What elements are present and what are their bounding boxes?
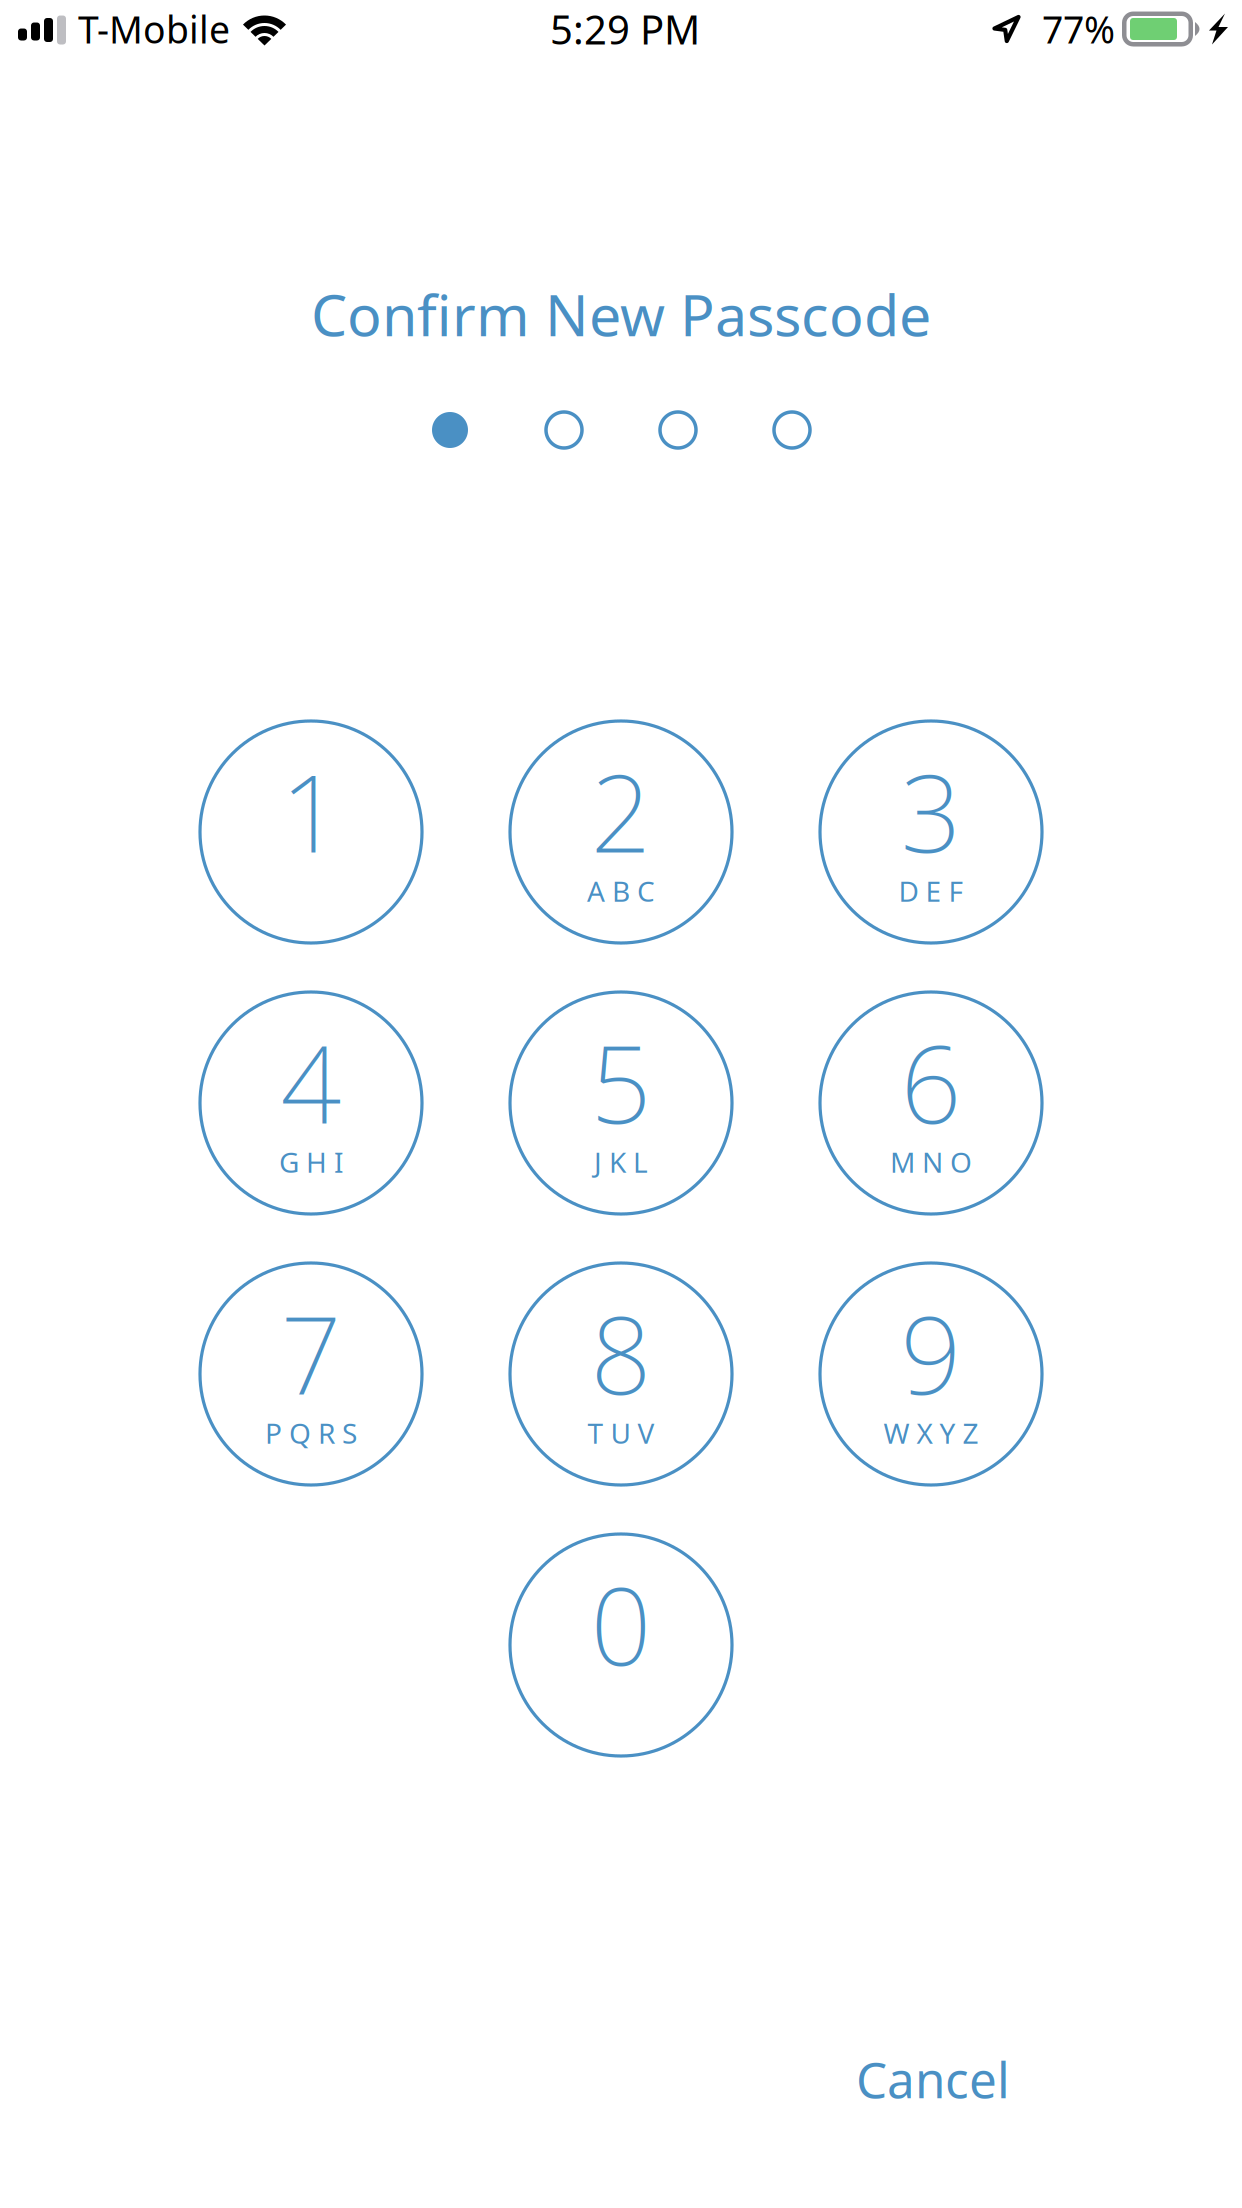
staticText: 5:29 PM	[550, 2, 700, 55]
staticText: 77%	[1042, 4, 1115, 54]
staticText: PQRS	[265, 1414, 357, 1452]
staticText: T-Mobile	[78, 4, 230, 54]
staticText: 1	[280, 740, 341, 882]
staticText: 3	[900, 740, 961, 882]
button[interactable]: 4 GHI	[200, 992, 422, 1214]
staticText: WXYZ	[883, 1414, 978, 1452]
staticText: 5	[590, 1011, 651, 1153]
button[interactable]: Cancel	[856, 2056, 1010, 2102]
staticText: 4	[280, 1011, 341, 1153]
staticText: TUV	[587, 1414, 654, 1452]
staticText: 9	[900, 1282, 961, 1424]
staticText: 7	[280, 1282, 341, 1424]
staticText: GHI	[279, 1143, 343, 1181]
button[interactable]: 1	[200, 721, 422, 943]
staticText: DEF	[898, 872, 963, 910]
button[interactable]: 9 WXYZ	[820, 1263, 1042, 1485]
staticText: 8	[590, 1282, 651, 1424]
staticText: 6	[900, 1011, 961, 1153]
staticText: 2	[590, 740, 651, 882]
staticText: 0	[590, 1553, 651, 1695]
button[interactable]: 2 ABC	[510, 721, 732, 943]
staticText: Cancel	[856, 2046, 1010, 2112]
staticText: Confirm New Passcode	[311, 276, 931, 352]
staticText: ABC	[587, 872, 655, 910]
button[interactable]: 3 DEF	[820, 721, 1042, 943]
button[interactable]: 8 TUV	[510, 1263, 732, 1485]
staticText: MNO	[890, 1143, 972, 1181]
button[interactable]: 5 JKL	[510, 992, 732, 1214]
staticText: JKL	[594, 1143, 648, 1181]
button[interactable]: 6 MNO	[820, 992, 1042, 1214]
button[interactable]: 0	[510, 1534, 732, 1756]
button[interactable]: 7 PQRS	[200, 1263, 422, 1485]
